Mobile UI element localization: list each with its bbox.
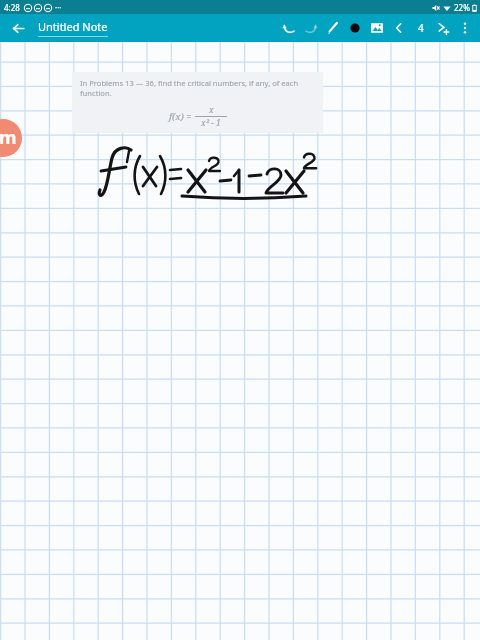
staticText: ··· bbox=[55, 2, 62, 13]
button[interactable]: Insert image bbox=[366, 17, 388, 39]
staticText: x bbox=[209, 104, 214, 116]
staticText: Untitled Note bbox=[38, 19, 108, 34]
button[interactable]: Pen bbox=[322, 17, 344, 39]
staticText: m bbox=[0, 125, 17, 150]
button[interactable]: 4 bbox=[410, 17, 432, 39]
staticText: function. bbox=[80, 88, 112, 98]
button[interactable]: Add page bbox=[432, 17, 454, 39]
button[interactable]: Untitled Note bbox=[36, 19, 110, 37]
staticText: 4 bbox=[418, 21, 424, 35]
button[interactable]: Undo bbox=[278, 17, 300, 39]
staticText: x² − 1 bbox=[201, 117, 221, 129]
button[interactable]: Previous page bbox=[388, 17, 410, 39]
button[interactable]: Colour bbox=[344, 17, 366, 39]
button[interactable]: More options bbox=[454, 17, 476, 39]
button[interactable]: Redo bbox=[300, 17, 322, 39]
button[interactable]: Back bbox=[8, 18, 28, 38]
staticText: 4:28 bbox=[4, 2, 20, 13]
staticText: f(x) = bbox=[169, 110, 192, 123]
staticText: In Problems 13 — 36, find the critical n… bbox=[80, 78, 299, 88]
staticText: 22% bbox=[454, 2, 470, 13]
